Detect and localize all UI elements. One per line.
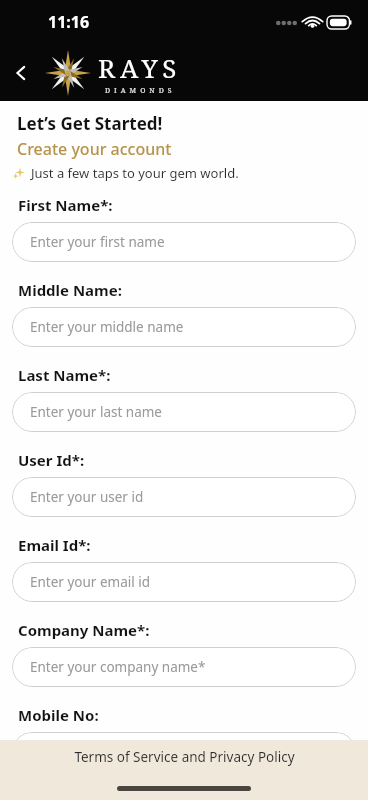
staticText: RAYS	[98, 50, 182, 85]
staticText: Mobile No:	[18, 705, 99, 725]
staticText: Last Name*:	[18, 365, 111, 385]
button[interactable]: Enter your last name	[12, 392, 356, 432]
staticText: Enter your email id	[30, 573, 150, 591]
staticText: First Name*:	[18, 195, 113, 215]
staticText: Enter your middle name	[30, 318, 184, 336]
staticText: Enter your mobile no	[30, 743, 164, 761]
button[interactable]: Enter your middle name	[12, 307, 356, 347]
button[interactable]: Enter your first name	[12, 222, 356, 262]
staticText: Create your account	[17, 138, 172, 160]
button[interactable]: Enter your company name*	[12, 647, 356, 687]
staticText: 11:16	[48, 11, 90, 33]
staticText: Enter your company name*	[30, 658, 206, 676]
staticText: Enter your first name	[30, 233, 165, 251]
staticText: Let’s Get Started!	[17, 112, 163, 135]
staticText: Email Id*:	[18, 535, 91, 555]
staticText: Enter your user id	[30, 488, 144, 506]
button[interactable]: Enter your email id	[12, 562, 356, 602]
staticText: DIAMONDS	[105, 86, 176, 96]
button[interactable]: Terms of Service and Privacy Policy	[0, 740, 368, 774]
staticText: Terms of Service and Privacy Policy	[74, 748, 295, 766]
button[interactable]: Enter your mobile no	[12, 732, 356, 772]
staticText: Enter your last name	[30, 403, 162, 421]
button[interactable]: Back	[4, 56, 38, 90]
staticText: Just a few taps to your gem world.	[31, 164, 239, 182]
button[interactable]: Enter your user id	[12, 477, 356, 517]
staticText: Company Name*:	[18, 620, 150, 640]
staticText: User Id*:	[18, 450, 85, 470]
staticText: Middle Name:	[18, 280, 122, 300]
